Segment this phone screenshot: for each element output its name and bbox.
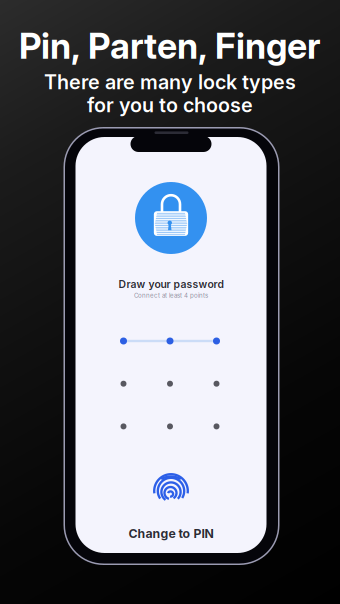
- button[interactable]: Change to PIN: [75, 137, 266, 553]
- staticText: for you to choose: [87, 93, 253, 117]
- staticText: Draw your password: [118, 278, 223, 290]
- staticText: Pin, Parten, Finger: [19, 25, 321, 67]
- staticText: Change to PIN: [128, 526, 213, 541]
- staticText: Connect at least 4 points: [134, 292, 208, 299]
- staticText: There are many lock types: [44, 70, 296, 94]
